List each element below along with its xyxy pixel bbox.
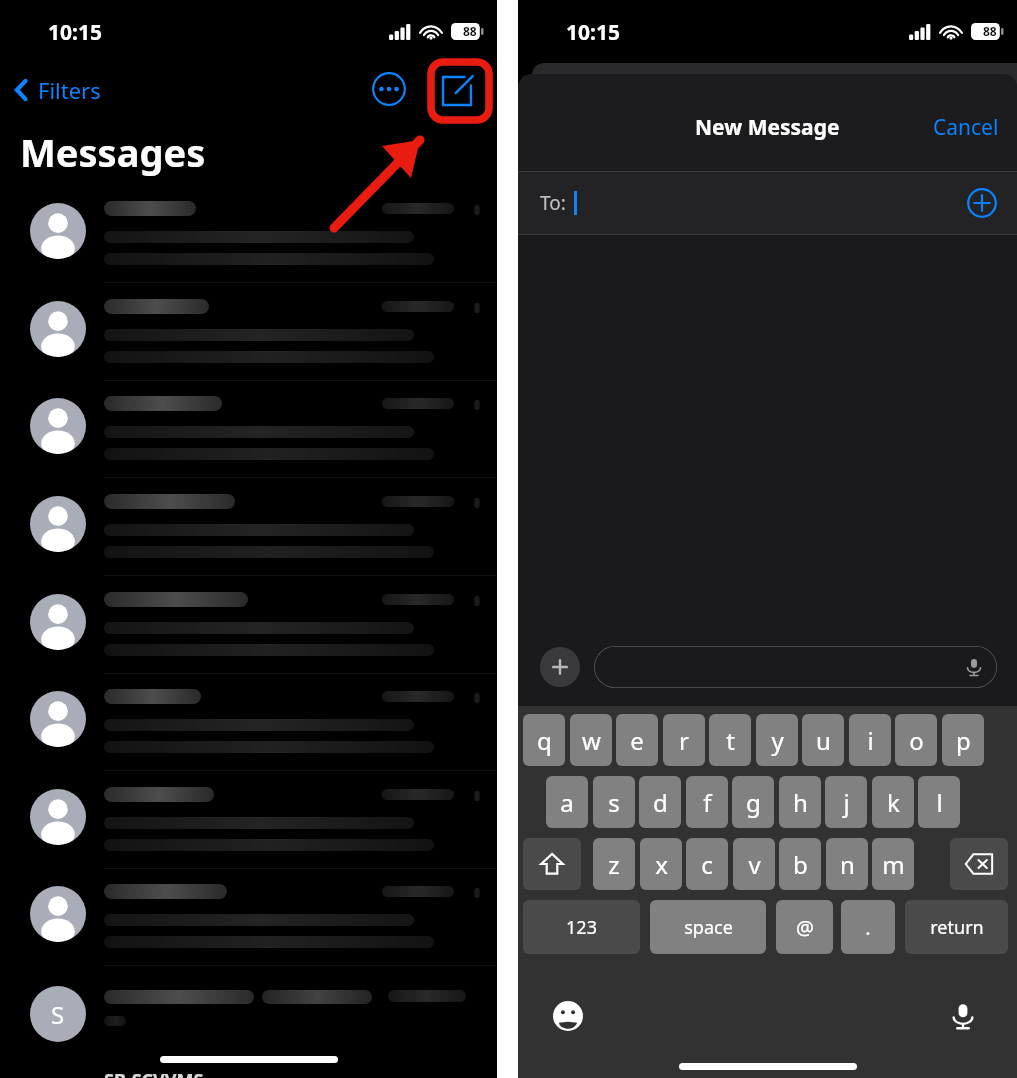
button[interactable]	[0, 773, 497, 870]
staticText: 10:15	[48, 18, 102, 47]
button[interactable]: u	[802, 714, 844, 766]
button[interactable]	[0, 480, 497, 577]
staticText: a	[560, 786, 574, 819]
button[interactable]: p	[942, 714, 984, 766]
button[interactable]: Backspace	[950, 838, 1008, 890]
staticText: l	[936, 786, 943, 819]
staticText: New Message	[695, 113, 840, 142]
staticText: @	[796, 914, 814, 941]
button[interactable]: Cancel	[915, 103, 1017, 152]
button[interactable]	[0, 675, 497, 772]
button[interactable]: f	[686, 776, 728, 828]
button[interactable]: More options	[366, 66, 412, 112]
staticText: t	[726, 724, 735, 757]
staticText: .	[865, 914, 871, 941]
button[interactable]	[0, 285, 497, 382]
button[interactable]: .	[841, 900, 895, 954]
button[interactable]: o	[895, 714, 937, 766]
button[interactable]: @	[776, 900, 833, 954]
button[interactable]: l	[918, 776, 960, 828]
button[interactable]: m	[872, 838, 914, 890]
staticText: j	[843, 786, 850, 819]
staticText: 10:15	[566, 18, 620, 47]
staticText: f	[703, 786, 712, 819]
staticText: SB-SCVVMS	[104, 1068, 204, 1078]
staticText: r	[679, 724, 689, 757]
staticText: u	[816, 724, 831, 757]
staticText: n	[840, 848, 855, 881]
button[interactable]: return	[905, 900, 1008, 954]
button[interactable]: i	[849, 714, 891, 766]
button[interactable]: r	[663, 714, 705, 766]
button[interactable]: c	[686, 838, 728, 890]
staticText: w	[582, 724, 601, 757]
staticText: i	[867, 724, 874, 757]
button[interactable]: h	[779, 776, 821, 828]
button[interactable]: Filters	[8, 70, 107, 110]
button[interactable]: b	[779, 838, 821, 890]
button[interactable]: space	[650, 900, 766, 954]
staticText: h	[793, 786, 808, 819]
staticText: Filters	[38, 75, 101, 105]
staticText: b	[793, 848, 808, 881]
staticText: 88	[463, 23, 477, 39]
button[interactable]: Emoji	[548, 996, 588, 1036]
staticText: S	[51, 998, 65, 1031]
button[interactable]: Dictation	[943, 996, 983, 1036]
staticText: q	[537, 724, 552, 757]
button[interactable]: n	[826, 838, 868, 890]
button[interactable]	[0, 578, 497, 675]
button[interactable]: g	[732, 776, 774, 828]
button[interactable]	[0, 187, 497, 284]
staticText: c	[701, 848, 713, 881]
staticText: k	[887, 786, 900, 819]
button[interactable]	[594, 646, 997, 688]
button[interactable]: v	[733, 838, 775, 890]
staticText: m	[882, 848, 905, 881]
staticText: x	[655, 848, 668, 881]
staticText: 88	[983, 23, 997, 39]
button[interactable]: 123	[523, 900, 640, 954]
button[interactable]: w	[570, 714, 612, 766]
button[interactable]: Shift	[523, 838, 581, 890]
button[interactable]: z	[593, 838, 635, 890]
staticText: e	[630, 724, 644, 757]
button[interactable]: d	[639, 776, 681, 828]
staticText: 123	[566, 915, 597, 940]
staticText: To:	[540, 190, 566, 216]
button[interactable]: k	[872, 776, 914, 828]
staticText: Messages	[20, 126, 206, 178]
button[interactable]: j	[825, 776, 867, 828]
button[interactable]: To:	[518, 172, 1017, 234]
staticText: p	[956, 724, 971, 757]
button[interactable]: y	[756, 714, 798, 766]
staticText: Cancel	[933, 113, 999, 142]
button[interactable]: q	[523, 714, 565, 766]
button[interactable]	[0, 382, 497, 479]
button[interactable]: New message	[432, 66, 482, 116]
button[interactable]: x	[640, 838, 682, 890]
staticText: d	[653, 786, 668, 819]
button[interactable]: Add contact	[961, 182, 1003, 224]
button[interactable]: S	[0, 968, 497, 1060]
button[interactable]: s	[593, 776, 635, 828]
staticText: z	[608, 848, 620, 881]
staticText: return	[930, 915, 984, 940]
button[interactable]: a	[546, 776, 588, 828]
staticText: s	[608, 786, 620, 819]
button[interactable]: Add attachment	[540, 647, 580, 687]
button[interactable]: e	[616, 714, 658, 766]
staticText: y	[771, 724, 784, 757]
button[interactable]	[0, 870, 497, 967]
staticText: v	[748, 848, 761, 881]
staticText: g	[746, 786, 761, 819]
button[interactable]: t	[709, 714, 751, 766]
staticText: o	[909, 724, 924, 757]
staticText: space	[684, 915, 733, 940]
